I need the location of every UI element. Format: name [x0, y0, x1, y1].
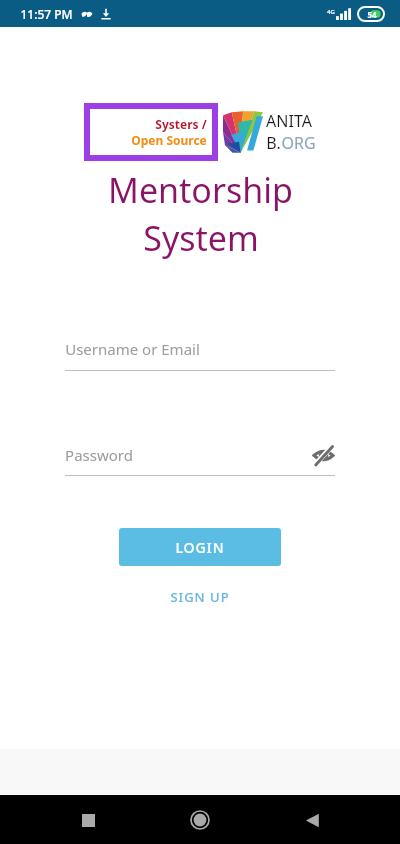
- staticText: Mentorship: [108, 167, 293, 213]
- button[interactable]: LOGIN: [119, 528, 281, 566]
- staticText: 4G: [327, 8, 335, 16]
- button[interactable]: Home: [179, 799, 221, 841]
- button[interactable]: SIGN UP: [154, 582, 246, 612]
- button[interactable]: Back: [291, 799, 333, 841]
- staticText: ORG: [281, 132, 316, 154]
- staticText: System: [143, 215, 259, 261]
- button[interactable]: Show password: [311, 443, 335, 467]
- staticText: B.: [266, 132, 281, 154]
- button[interactable]: Username or Email: [65, 339, 335, 371]
- button[interactable]: Password: [65, 443, 335, 476]
- staticText: Password: [65, 445, 133, 465]
- staticText: 54: [367, 9, 377, 20]
- staticText: Username or Email: [65, 339, 200, 359]
- staticText: Systers /: [155, 116, 207, 132]
- staticText: LOGIN: [175, 538, 225, 557]
- staticText: 11:57 PM: [20, 6, 73, 22]
- staticText: Open Source: [131, 132, 207, 148]
- button[interactable]: Recent apps: [67, 799, 109, 841]
- staticText: ANITA: [266, 110, 312, 132]
- staticText: SIGN UP: [170, 588, 230, 606]
